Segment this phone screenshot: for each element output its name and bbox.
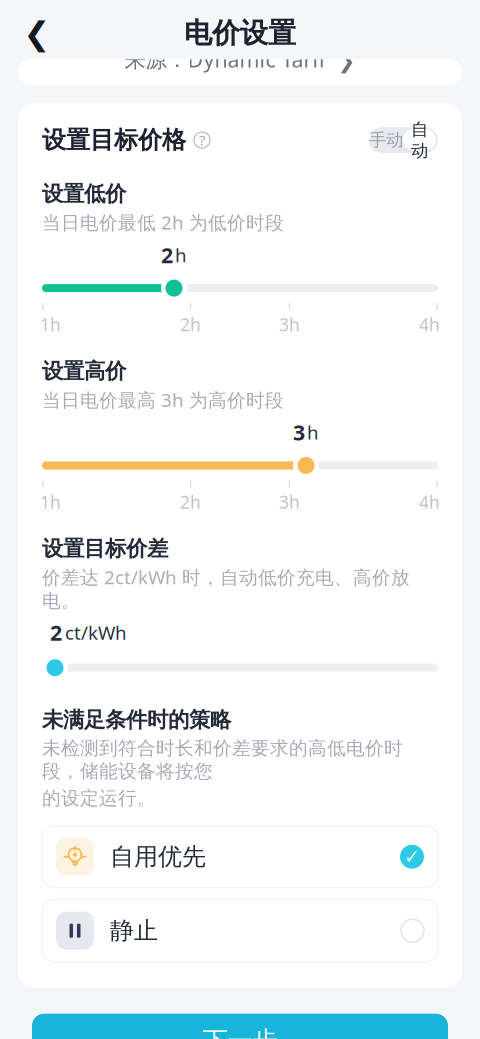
staticText: 来源：Dynamic Tarif ❯ <box>124 45 355 73</box>
staticText: 设置目标价格 <box>42 125 186 155</box>
staticText: 静止 <box>110 916 158 945</box>
staticText: 下一步 <box>202 1025 277 1039</box>
staticText: h <box>175 242 187 267</box>
button[interactable]: 下一步 <box>32 1014 448 1039</box>
button[interactable]: 自用优先 <box>42 826 438 888</box>
staticText: 自用优先 <box>110 842 206 871</box>
staticText: h <box>307 420 319 445</box>
staticText: 2h <box>180 313 201 336</box>
button[interactable]: 静止 <box>42 900 438 962</box>
staticText: 手动 <box>369 129 403 151</box>
staticText: 当日电价最低 2h 为低价时段 <box>42 210 284 235</box>
staticText: 1h <box>40 313 61 336</box>
staticText: ✓ <box>404 846 420 867</box>
button[interactable]: Back <box>14 10 60 56</box>
staticText: 2h <box>180 490 201 513</box>
staticText: 的设定运行。 <box>42 787 156 810</box>
staticText: 3 <box>293 418 305 446</box>
staticText: 当日电价最高 3h 为高价时段 <box>42 387 284 412</box>
staticText: 设置目标价差 <box>42 535 168 562</box>
staticText: 1h <box>40 490 61 513</box>
staticText: 未满足条件时的策略 <box>42 707 231 733</box>
staticText: ❮ <box>23 15 50 51</box>
staticText: 设置低价 <box>42 181 126 207</box>
staticText: 电价设置 <box>184 16 296 50</box>
staticText: 3h <box>279 490 300 513</box>
staticText: ? <box>199 130 205 150</box>
staticText: 3h <box>279 313 300 336</box>
staticText: 自动 <box>411 119 428 161</box>
staticText: 价差达 2ct/kWh 时，自动低价充电、高价放电。 <box>42 565 410 612</box>
staticText: 未检测到符合时长和价差要求的高低电价时段，储能设备将按您 <box>42 737 403 783</box>
staticText: 4h <box>419 490 440 513</box>
staticText: 设置高价 <box>42 358 126 384</box>
staticText: 4h <box>419 313 440 336</box>
staticText: 2 <box>161 241 173 269</box>
staticText: ct/kWh <box>65 620 127 645</box>
button[interactable]: 手动 <box>369 127 438 153</box>
button[interactable]: Help <box>194 132 210 148</box>
staticText: 2 <box>50 618 62 647</box>
